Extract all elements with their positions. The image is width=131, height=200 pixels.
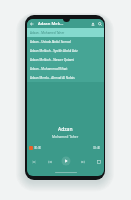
button[interactable]: Next (78, 157, 87, 166)
button[interactable]: Search (96, 20, 103, 27)
staticText: Adzan - Ustadz Abdul Somad (30, 40, 71, 44)
staticText: Adzan Merdu - Ahmad Al Nufais (30, 76, 75, 80)
button[interactable]: Adzan Merdu - Ahmad Al Nufais (27, 73, 104, 82)
button[interactable]: Equalizer (29, 146, 33, 150)
button[interactable]: Repeat (94, 157, 103, 166)
staticText: Adzan Mekkah - Nasser Qatami (30, 58, 75, 62)
staticText: Mohamed Taher (52, 134, 79, 139)
staticText: Adzan (58, 126, 73, 133)
button[interactable]: Adzan - Mohamed Taher (27, 28, 104, 37)
button[interactable]: Play (61, 156, 71, 166)
staticText: Adzan - Muhammad Rifaat (30, 67, 68, 71)
staticText: Adzan - Mohamed Taher (30, 31, 65, 35)
button[interactable]: Adzan Mekkah - Syaikh Abdul Aziz (27, 46, 104, 55)
button[interactable]: Download (89, 20, 96, 27)
button[interactable]: Back (28, 20, 35, 27)
button[interactable]: Adzan - Ustadz Abdul Somad (27, 37, 104, 46)
staticText: 00:00 (34, 146, 42, 150)
button[interactable]: Adzan Mekkah - Nasser Qatami (27, 55, 104, 64)
button[interactable]: Adzan - Muhammad Rifaat (27, 64, 104, 73)
button[interactable]: Previous (45, 157, 54, 166)
button[interactable]: Shuffle (29, 157, 38, 166)
staticText: 03:40 (93, 146, 101, 150)
staticText: Adzan Mekkah - Syaikh Abdul Aziz (30, 49, 78, 53)
staticText: Adzan Mek... (38, 21, 64, 27)
